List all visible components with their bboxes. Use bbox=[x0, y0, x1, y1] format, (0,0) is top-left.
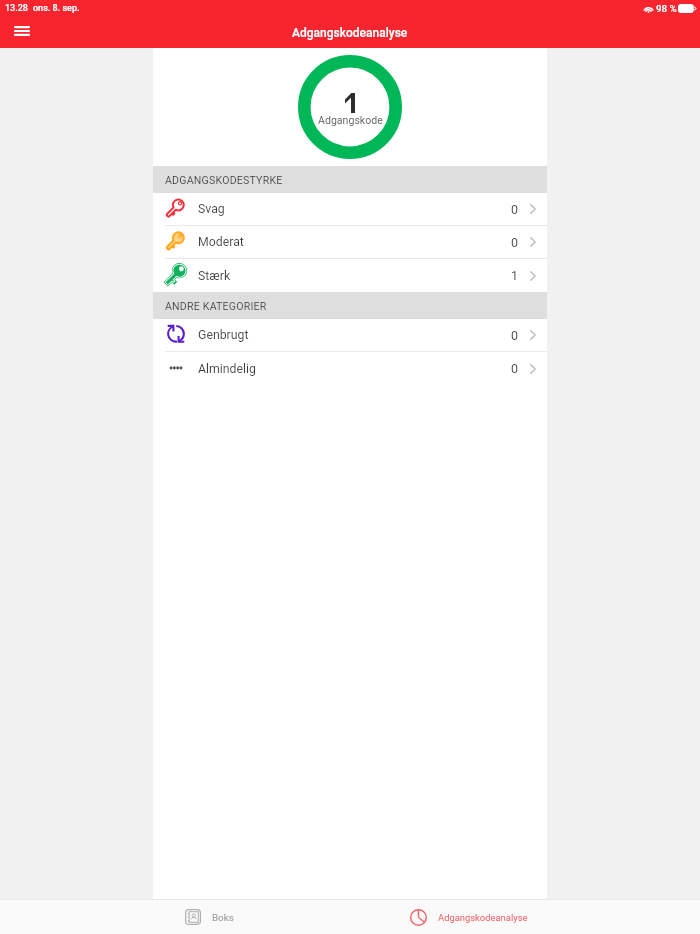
staticText: Adgangskode bbox=[318, 114, 383, 126]
staticText: Svag bbox=[198, 202, 225, 216]
staticText: Genbrugt bbox=[198, 328, 249, 342]
staticText: Moderat bbox=[198, 235, 244, 249]
staticText: 0 bbox=[511, 361, 519, 376]
staticText: 0 bbox=[511, 202, 519, 217]
button[interactable]: Stærk bbox=[153, 259, 547, 292]
staticText: ADGANGSKODESTYRKE bbox=[165, 174, 283, 186]
staticText: Adgangskodeanalyse bbox=[438, 912, 528, 923]
staticText: Almindelig bbox=[198, 362, 256, 376]
button[interactable]: Svag bbox=[153, 193, 547, 225]
staticText: Adgangskodeanalyse bbox=[292, 26, 408, 40]
button[interactable]: Menu bbox=[8, 17, 36, 45]
staticText: 0 bbox=[511, 328, 519, 343]
staticText: 0 bbox=[511, 235, 519, 250]
button[interactable]: Almindelig bbox=[153, 352, 547, 385]
staticText: 13.28 bbox=[5, 3, 28, 14]
button[interactable]: Boks bbox=[0, 900, 338, 934]
button[interactable]: Moderat bbox=[153, 226, 547, 258]
staticText: 98 % bbox=[656, 3, 677, 14]
button[interactable]: Genbrugt bbox=[153, 319, 547, 351]
staticText: Stærk bbox=[198, 269, 231, 283]
staticText: Boks bbox=[212, 912, 234, 923]
button[interactable]: Adgangskodeanalyse bbox=[338, 900, 700, 934]
staticText: ANDRE KATEGORIER bbox=[165, 300, 267, 312]
staticText: ons. 8. sep. bbox=[33, 3, 80, 14]
staticText: 1 bbox=[511, 268, 519, 283]
